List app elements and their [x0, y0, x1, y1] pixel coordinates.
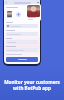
button[interactable]	[6, 57, 38, 62]
button[interactable]: Customer photo card	[26, 4, 41, 21]
button[interactable]	[6, 24, 38, 28]
button[interactable]: Add customer	[16, 12, 21, 17]
button[interactable]: Customer A	[6, 10, 13, 19]
button[interactable]: Back	[5, 1, 8, 4]
button[interactable]	[6, 40, 38, 44]
staticText: Monitor your customers	[4, 79, 60, 85]
button[interactable]	[6, 32, 38, 36]
staticText: with BetPub app	[13, 85, 51, 91]
button[interactable]	[6, 48, 38, 52]
